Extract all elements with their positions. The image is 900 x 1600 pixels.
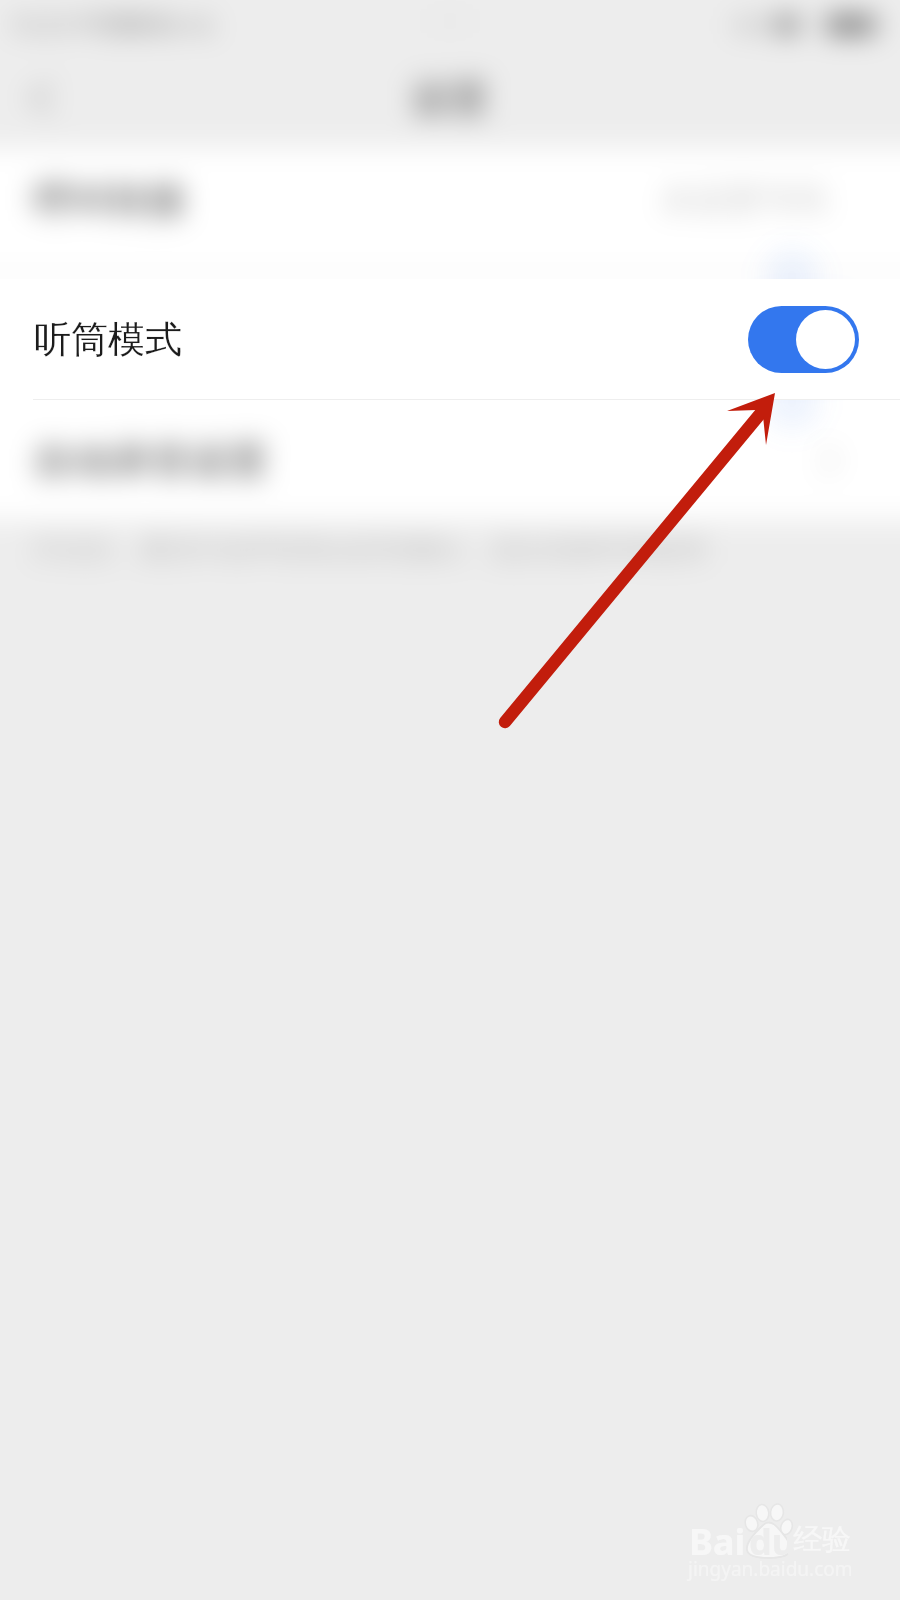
- staticText: 听筒模式: [34, 316, 182, 363]
- staticText: 听筒模式: [34, 316, 182, 363]
- staticText: 设置: [411, 74, 489, 123]
- button[interactable]: 听筒模式: [0, 279, 900, 400]
- staticText: 中国移动: [78, 9, 178, 40]
- staticText: 呼叫转接: [34, 176, 186, 224]
- staticText: Bai: [689, 1517, 746, 1566]
- staticText: du: [749, 1517, 796, 1566]
- staticText: 经验: [793, 1521, 851, 1558]
- staticText: 自动录音设置: [34, 436, 268, 485]
- staticText: 开启后，通话中的声音将从听筒播出，适合安静环境使用: [32, 533, 707, 567]
- button[interactable]: Earpiece mode, on: [748, 306, 859, 373]
- button[interactable]: Earpiece mode: [748, 306, 859, 373]
- staticText: HD: [732, 8, 768, 41]
